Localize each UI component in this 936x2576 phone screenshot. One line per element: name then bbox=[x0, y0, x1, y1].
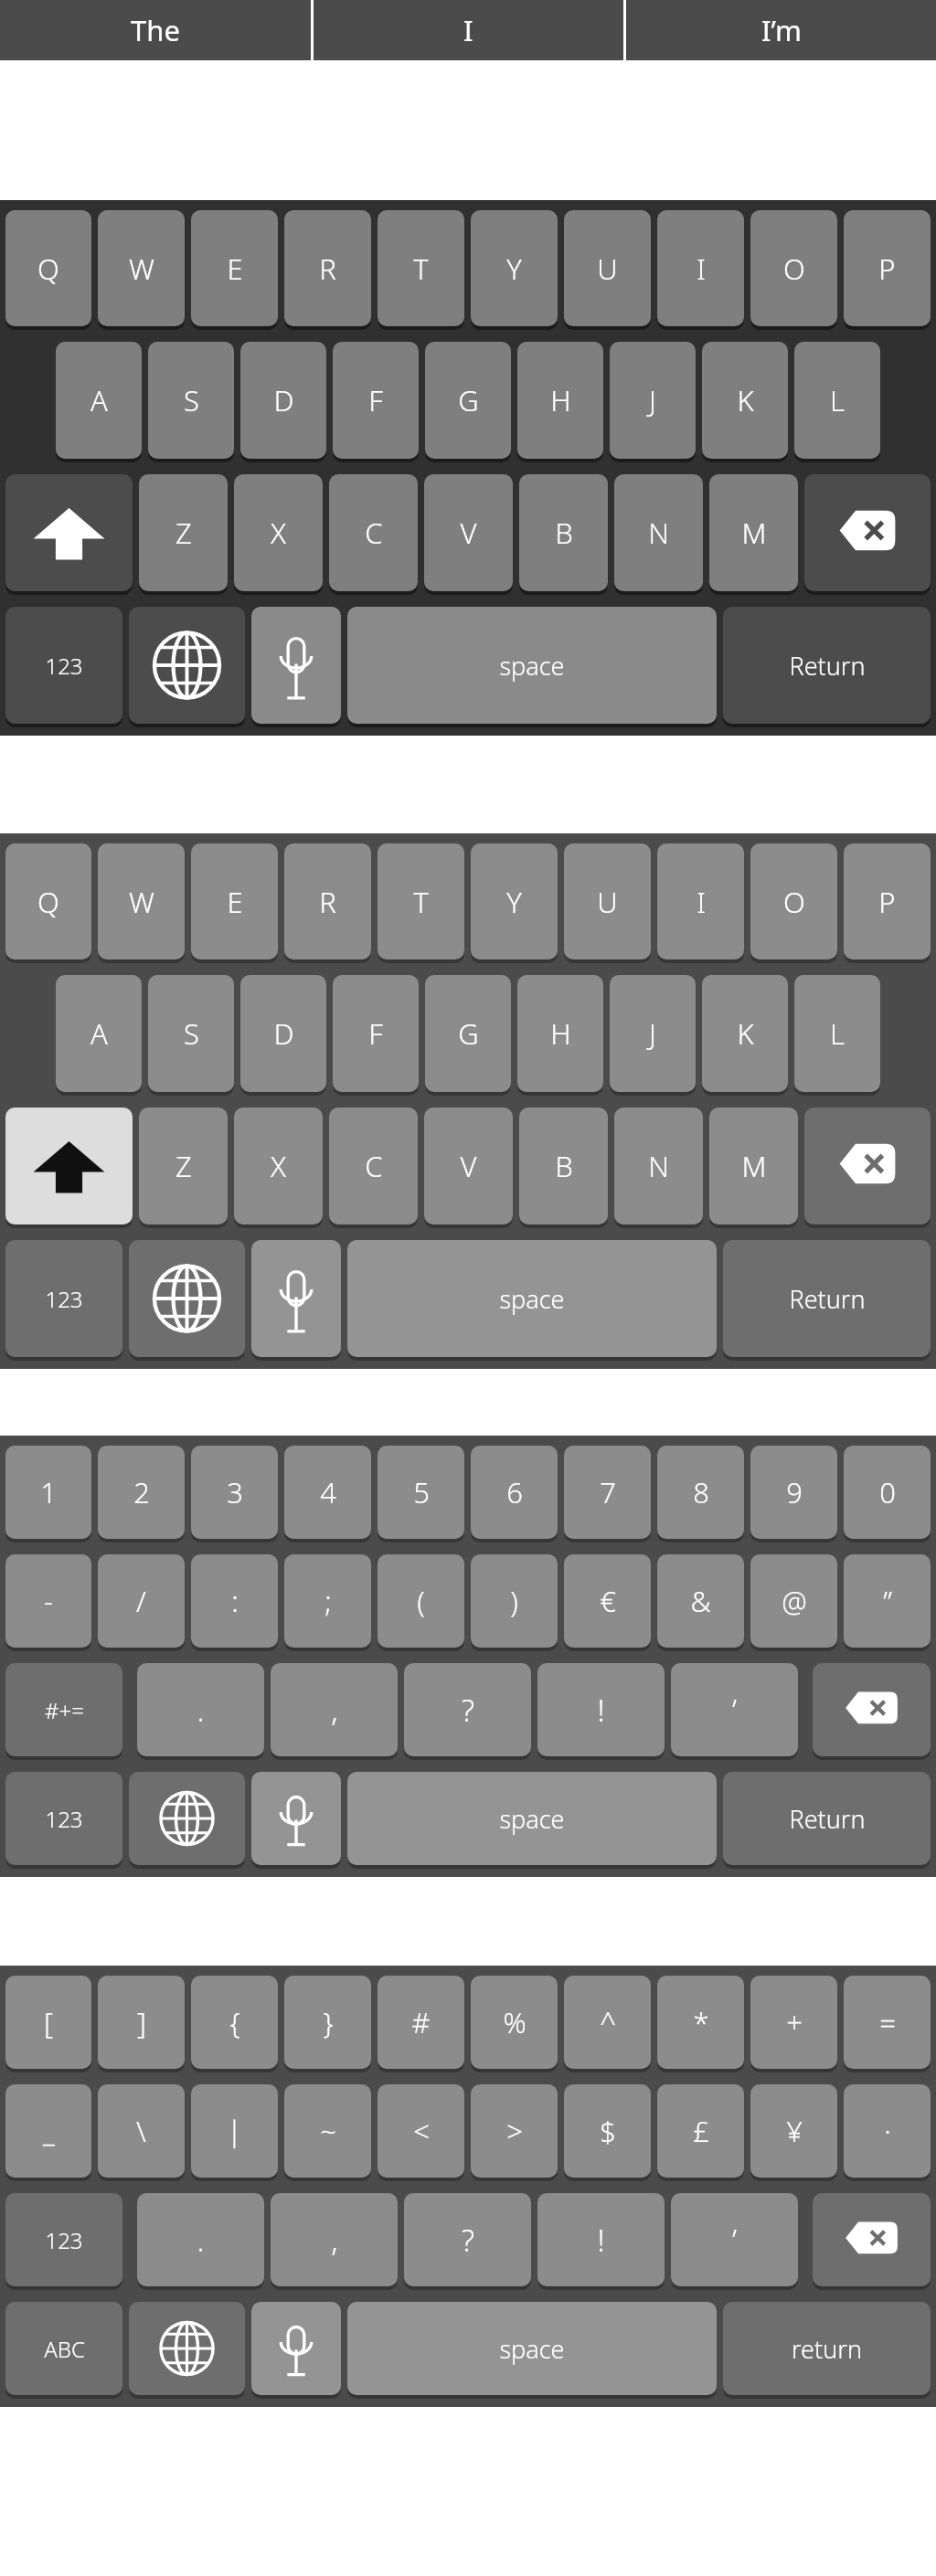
button[interactable]: Dictate bbox=[251, 1240, 341, 1361]
button[interactable]: , bbox=[271, 2193, 398, 2290]
button[interactable]: J bbox=[610, 342, 696, 462]
button[interactable]: C bbox=[329, 474, 418, 595]
button[interactable]: L bbox=[794, 975, 880, 1096]
button[interactable]: ? bbox=[404, 1663, 531, 1760]
button[interactable]: R bbox=[284, 210, 371, 330]
button[interactable]: Return bbox=[723, 1772, 931, 1869]
button[interactable]: ^ bbox=[564, 1976, 651, 2072]
button[interactable]: E bbox=[191, 843, 278, 963]
button[interactable]: D bbox=[240, 342, 326, 462]
button[interactable]: Shift bbox=[5, 1108, 133, 1228]
button[interactable]: Y bbox=[471, 843, 558, 963]
button[interactable]: £ bbox=[657, 2084, 744, 2181]
button[interactable]: I bbox=[657, 210, 744, 330]
button[interactable]: 123 bbox=[5, 2193, 122, 2290]
button[interactable]: · bbox=[844, 2084, 931, 2181]
button[interactable]: Q bbox=[5, 210, 91, 330]
button[interactable]: C bbox=[329, 1108, 418, 1228]
button[interactable]: ” bbox=[844, 1554, 931, 1651]
button[interactable]: [ bbox=[5, 1976, 91, 2072]
button[interactable]: F bbox=[333, 342, 419, 462]
button[interactable]: I bbox=[657, 843, 744, 963]
button[interactable]: < bbox=[378, 2084, 464, 2181]
button[interactable]: T bbox=[378, 210, 464, 330]
button[interactable]: . bbox=[137, 1663, 264, 1760]
button[interactable]: ; bbox=[284, 1554, 371, 1651]
button[interactable]: Dictate bbox=[251, 1772, 341, 1869]
button[interactable]: ’ bbox=[671, 1663, 798, 1760]
button[interactable]: A bbox=[56, 975, 142, 1096]
button[interactable]: D bbox=[240, 975, 326, 1096]
button[interactable]: Switch keyboard bbox=[129, 1772, 245, 1869]
button[interactable]: V bbox=[424, 1108, 513, 1228]
button[interactable]: Delete bbox=[804, 474, 931, 595]
button[interactable]: Delete bbox=[813, 1663, 931, 1760]
button[interactable]: #+= bbox=[5, 1663, 122, 1760]
button[interactable]: * bbox=[657, 1976, 744, 2072]
button[interactable]: 2 bbox=[98, 1446, 185, 1542]
button[interactable]: + bbox=[750, 1976, 837, 2072]
button[interactable]: The bbox=[0, 0, 311, 60]
button[interactable]: Return bbox=[723, 1240, 931, 1361]
button[interactable]: 4 bbox=[284, 1446, 371, 1542]
button[interactable]: ? bbox=[404, 2193, 531, 2290]
button[interactable]: O bbox=[750, 843, 837, 963]
button[interactable]: B bbox=[519, 1108, 608, 1228]
button[interactable]: 123 bbox=[5, 607, 122, 727]
button[interactable]: H bbox=[517, 342, 603, 462]
button[interactable]: _ bbox=[5, 2084, 91, 2181]
button[interactable]: W bbox=[98, 843, 185, 963]
button[interactable]: G bbox=[425, 975, 511, 1096]
button[interactable]: , bbox=[271, 1663, 398, 1760]
button[interactable]: } bbox=[284, 1976, 371, 2072]
button[interactable]: Switch keyboard bbox=[129, 607, 245, 727]
button[interactable]: M bbox=[709, 474, 798, 595]
button[interactable]: O bbox=[750, 210, 837, 330]
button[interactable]: space bbox=[347, 1240, 717, 1361]
button[interactable]: Dictate bbox=[251, 2302, 341, 2399]
button[interactable]: $ bbox=[564, 2084, 651, 2181]
button[interactable]: space bbox=[347, 1772, 717, 1869]
button[interactable]: ¥ bbox=[750, 2084, 837, 2181]
button[interactable]: X bbox=[234, 474, 323, 595]
button[interactable]: ~ bbox=[284, 2084, 371, 2181]
button[interactable]: 5 bbox=[378, 1446, 464, 1542]
button[interactable]: ! bbox=[537, 2193, 665, 2290]
button[interactable]: N bbox=[614, 1108, 703, 1228]
button[interactable]: N bbox=[614, 474, 703, 595]
button[interactable]: U bbox=[564, 210, 651, 330]
button[interactable]: € bbox=[564, 1554, 651, 1651]
button[interactable]: \ bbox=[98, 2084, 185, 2181]
button[interactable]: ! bbox=[537, 1663, 665, 1760]
button[interactable]: Switch keyboard bbox=[129, 2302, 245, 2399]
button[interactable]: Switch keyboard bbox=[129, 1240, 245, 1361]
button[interactable]: U bbox=[564, 843, 651, 963]
button[interactable]: : bbox=[191, 1554, 278, 1651]
button[interactable]: W bbox=[98, 210, 185, 330]
button[interactable]: B bbox=[519, 474, 608, 595]
button[interactable]: F bbox=[333, 975, 419, 1096]
button[interactable]: ’ bbox=[671, 2193, 798, 2290]
button[interactable]: ABC bbox=[5, 2302, 122, 2399]
button[interactable]: Shift bbox=[5, 474, 133, 595]
button[interactable]: & bbox=[657, 1554, 744, 1651]
button[interactable]: { bbox=[191, 1976, 278, 2072]
button[interactable]: Delete bbox=[813, 2193, 931, 2290]
button[interactable]: / bbox=[98, 1554, 185, 1651]
button[interactable]: 123 bbox=[5, 1240, 122, 1361]
button[interactable]: 123 bbox=[5, 1772, 122, 1869]
button[interactable]: Delete bbox=[804, 1108, 931, 1228]
button[interactable]: 9 bbox=[750, 1446, 837, 1542]
button[interactable]: space bbox=[347, 2302, 717, 2399]
button[interactable]: return bbox=[723, 2302, 931, 2399]
button[interactable]: Dictate bbox=[251, 607, 341, 727]
button[interactable]: 7 bbox=[564, 1446, 651, 1542]
button[interactable]: - bbox=[5, 1554, 91, 1651]
button[interactable]: > bbox=[471, 2084, 558, 2181]
button[interactable]: | bbox=[191, 2084, 278, 2181]
button[interactable]: P bbox=[844, 843, 931, 963]
button[interactable]: Y bbox=[471, 210, 558, 330]
button[interactable]: = bbox=[844, 1976, 931, 2072]
button[interactable]: K bbox=[702, 342, 788, 462]
button[interactable]: 0 bbox=[844, 1446, 931, 1542]
